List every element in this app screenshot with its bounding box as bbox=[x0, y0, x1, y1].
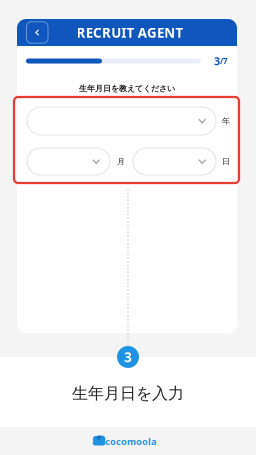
button[interactable]: Select bbox=[27, 148, 110, 175]
staticText: 年 bbox=[222, 116, 230, 126]
staticText: RECRUIT AGENT bbox=[77, 24, 183, 41]
button[interactable]: Select bbox=[27, 107, 216, 135]
button[interactable]: Select bbox=[133, 148, 216, 175]
staticText: 月 bbox=[117, 157, 125, 166]
staticText: 日 bbox=[222, 157, 230, 166]
staticText: 生年月日を教えてください bbox=[79, 84, 175, 93]
staticText: /7 bbox=[220, 56, 228, 66]
button[interactable]: Back bbox=[26, 22, 48, 43]
staticText: 生年月日を入力 bbox=[72, 384, 184, 403]
staticText: cocomoola bbox=[105, 435, 157, 448]
staticText: 3 bbox=[124, 348, 132, 366]
staticText: 3 bbox=[214, 54, 220, 68]
